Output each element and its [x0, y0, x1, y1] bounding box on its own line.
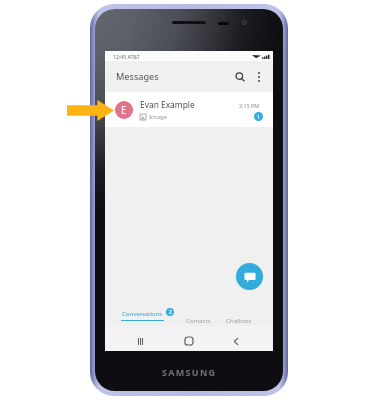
staticText: 12:45 AT&T: [113, 53, 140, 60]
button[interactable]: New conversation: [236, 263, 263, 290]
staticText: Contacts: [186, 317, 211, 325]
staticText: 2:15 PM: [239, 102, 260, 109]
button[interactable]: Conversations: [121, 310, 164, 321]
staticText: Evan Example: [140, 99, 195, 110]
button[interactable]: Recents: [130, 331, 150, 351]
button[interactable]: Contacts: [186, 317, 211, 325]
button[interactable]: Back: [226, 331, 246, 351]
button[interactable]: More options: [249, 67, 269, 87]
staticText: SAMSUNG: [162, 366, 217, 378]
button[interactable]: Chatbots: [226, 317, 252, 325]
staticText: Image: [149, 113, 168, 121]
staticText: E: [121, 103, 127, 117]
staticText: Chatbots: [226, 317, 252, 325]
staticText: Conversations: [122, 310, 163, 318]
button[interactable]: E: [105, 92, 273, 127]
staticText: Messages: [116, 70, 159, 83]
button[interactable]: Home: [179, 331, 199, 351]
staticText: 2: [169, 309, 172, 316]
staticText: 1: [257, 113, 261, 120]
button[interactable]: Search: [230, 67, 250, 87]
